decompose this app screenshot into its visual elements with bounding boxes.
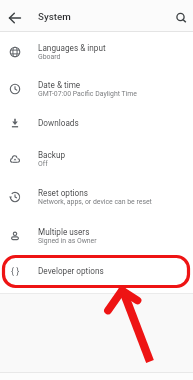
staticText: Signed in as Owner: [38, 237, 97, 245]
staticText: Network, apps, or device can be reset: [38, 198, 152, 206]
staticText: GMT-07:00 Pacific Daylight Time: [38, 90, 137, 98]
staticText: Off: [38, 160, 48, 168]
staticText: Downloads: [38, 118, 79, 128]
staticText: Gboard: [38, 53, 61, 61]
staticText: Date & time: [38, 80, 81, 90]
button[interactable]: [169, 5, 193, 29]
staticText: Backup: [38, 150, 66, 160]
staticText: Languages & input: [38, 43, 106, 53]
button[interactable]: Reset options: [0, 177, 193, 217]
button[interactable]: [2, 5, 28, 31]
button[interactable]: Multiple users: [0, 217, 193, 255]
staticText: Multiple users: [38, 227, 90, 237]
button[interactable]: { }: [0, 255, 193, 286]
staticText: { }: [11, 266, 20, 277]
staticText: Reset options: [38, 188, 89, 198]
button[interactable]: Backup: [0, 140, 193, 177]
button[interactable]: Languages & input: [0, 32, 193, 71]
button[interactable]: Date & time: [0, 71, 193, 106]
staticText: Developer options: [38, 266, 104, 276]
staticText: System: [38, 11, 71, 22]
button[interactable]: Downloads: [0, 106, 193, 140]
